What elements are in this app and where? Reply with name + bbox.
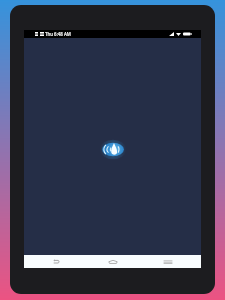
button[interactable]: Back (44, 255, 68, 268)
staticText: Thu 6:48 AM (45, 31, 71, 37)
button[interactable]: Home (101, 255, 125, 268)
button[interactable]: Recent apps (156, 255, 180, 268)
